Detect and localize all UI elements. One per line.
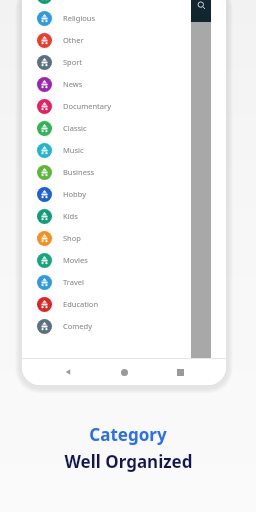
button[interactable]: Music — [37, 139, 223, 161]
button[interactable]: Business — [37, 161, 223, 183]
button[interactable]: Classic — [37, 117, 223, 139]
button[interactable]: Home — [114, 362, 134, 382]
staticText: Hobby — [63, 189, 86, 199]
staticText: Documentary — [63, 101, 111, 111]
button[interactable]: Hobby — [37, 183, 223, 205]
staticText: Comedy — [63, 321, 92, 331]
button[interactable]: Back — [58, 362, 78, 382]
staticText: Category — [89, 423, 167, 446]
button[interactable]: Education — [37, 293, 223, 315]
button[interactable]: News — [37, 73, 223, 95]
staticText: Travel — [63, 277, 84, 287]
staticText: Sport — [63, 57, 83, 67]
button[interactable]: Other — [37, 29, 223, 51]
button[interactable]: Recent apps — [170, 362, 190, 382]
staticText: Education — [63, 299, 99, 309]
staticText: Shop — [63, 233, 81, 243]
button[interactable]: Shop — [37, 227, 223, 249]
button[interactable]: Documentary — [37, 95, 223, 117]
button[interactable]: General — [37, 0, 223, 7]
staticText: Movies — [63, 255, 88, 265]
button[interactable]: Movies — [37, 249, 223, 271]
button[interactable]: Kids — [37, 205, 223, 227]
staticText: Religious — [63, 13, 96, 23]
staticText: Kids — [63, 211, 78, 221]
staticText: Classic — [63, 123, 87, 133]
button[interactable]: Search — [191, 0, 211, 22]
staticText: Well Organized — [64, 450, 193, 473]
button[interactable]: Religious — [37, 7, 223, 29]
button[interactable]: Travel — [37, 271, 223, 293]
button[interactable]: Sport — [37, 51, 223, 73]
staticText: Music — [63, 145, 84, 155]
staticText: News — [63, 79, 83, 89]
staticText: Business — [63, 167, 95, 177]
button[interactable]: Comedy — [37, 315, 223, 337]
staticText: Other — [63, 35, 84, 45]
